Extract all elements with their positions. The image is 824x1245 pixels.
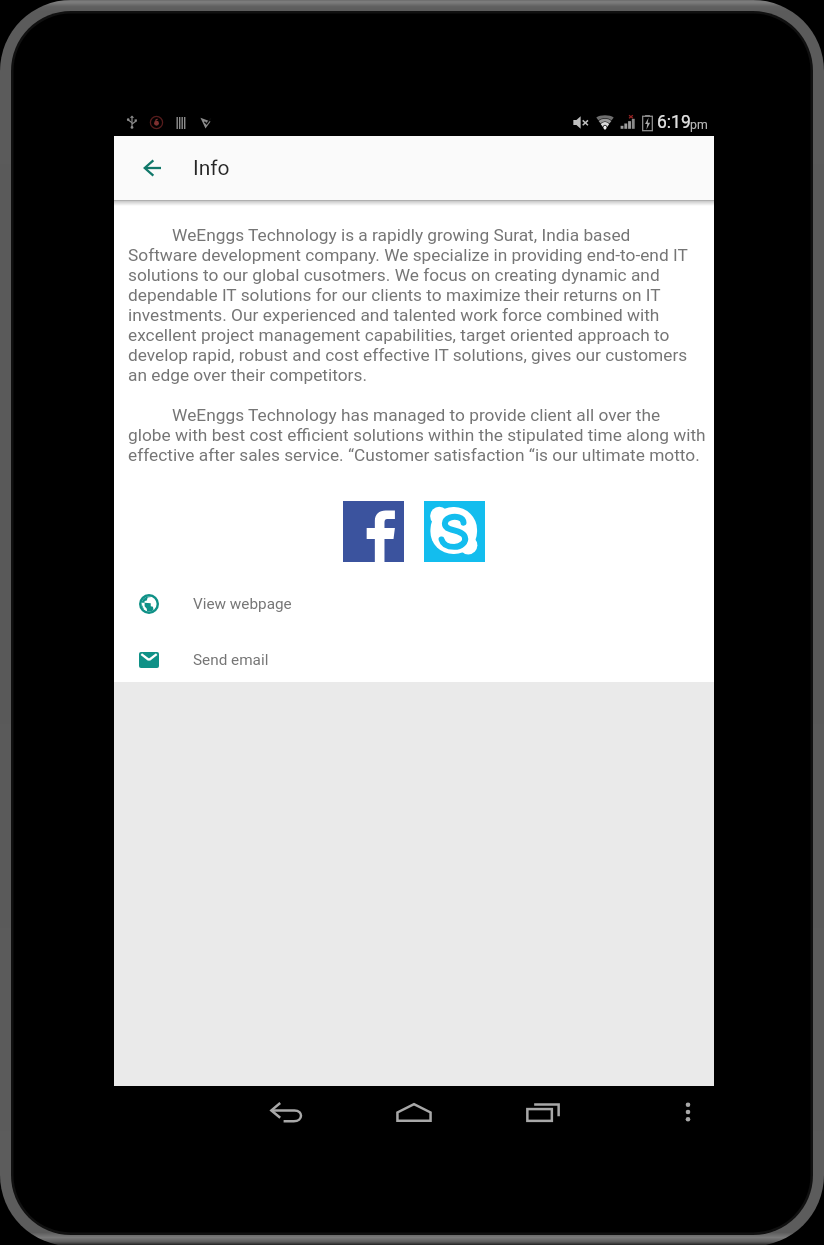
button[interactable]: Back xyxy=(126,142,178,194)
button[interactable]: Menu xyxy=(665,1089,711,1135)
staticText: pm xyxy=(690,118,708,132)
staticText: WeEnggs Technology has managed to provid… xyxy=(128,405,706,465)
button[interactable]: Facebook xyxy=(343,501,404,562)
button[interactable]: View webpage xyxy=(114,580,714,628)
button[interactable]: Recent apps xyxy=(520,1089,566,1135)
button[interactable]: Home xyxy=(391,1089,437,1135)
button[interactable]: Back xyxy=(264,1089,310,1135)
staticText: Info xyxy=(193,156,230,181)
button[interactable]: Send email xyxy=(114,636,714,684)
staticText: 6:19 xyxy=(657,112,691,133)
staticText: Send email xyxy=(193,651,269,669)
staticText: View webpage xyxy=(193,595,292,613)
button[interactable]: Skype xyxy=(424,501,485,562)
staticText: WeEnggs Technology is a rapidly growing … xyxy=(128,225,688,385)
